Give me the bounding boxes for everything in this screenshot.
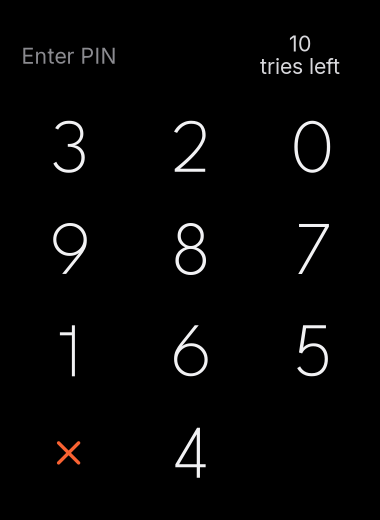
staticText: 7	[294, 221, 332, 291]
button[interactable]: 9	[8, 198, 129, 300]
button[interactable]: 5	[251, 299, 372, 401]
staticText: 10	[289, 31, 311, 57]
button[interactable]: 2	[129, 95, 250, 197]
button[interactable]: Delete	[8, 402, 129, 504]
button[interactable]: 3	[8, 95, 129, 197]
staticText: tries left	[260, 53, 340, 79]
staticText: 0	[291, 119, 335, 188]
button[interactable]: 8	[129, 198, 250, 300]
button[interactable]: 1	[8, 299, 129, 401]
staticText: Enter PIN	[21, 43, 116, 69]
button[interactable]: 7	[251, 198, 372, 300]
staticText: 2	[171, 119, 211, 188]
staticText: 9	[50, 221, 91, 291]
staticText: 8	[171, 221, 212, 291]
staticText: 6	[171, 322, 212, 392]
staticText: 4	[173, 425, 209, 495]
button[interactable]: 0	[251, 95, 372, 197]
button[interactable]: 4	[129, 402, 250, 504]
staticText: 5	[293, 322, 333, 392]
staticText: 3	[51, 119, 89, 188]
button[interactable]: 6	[129, 299, 250, 401]
